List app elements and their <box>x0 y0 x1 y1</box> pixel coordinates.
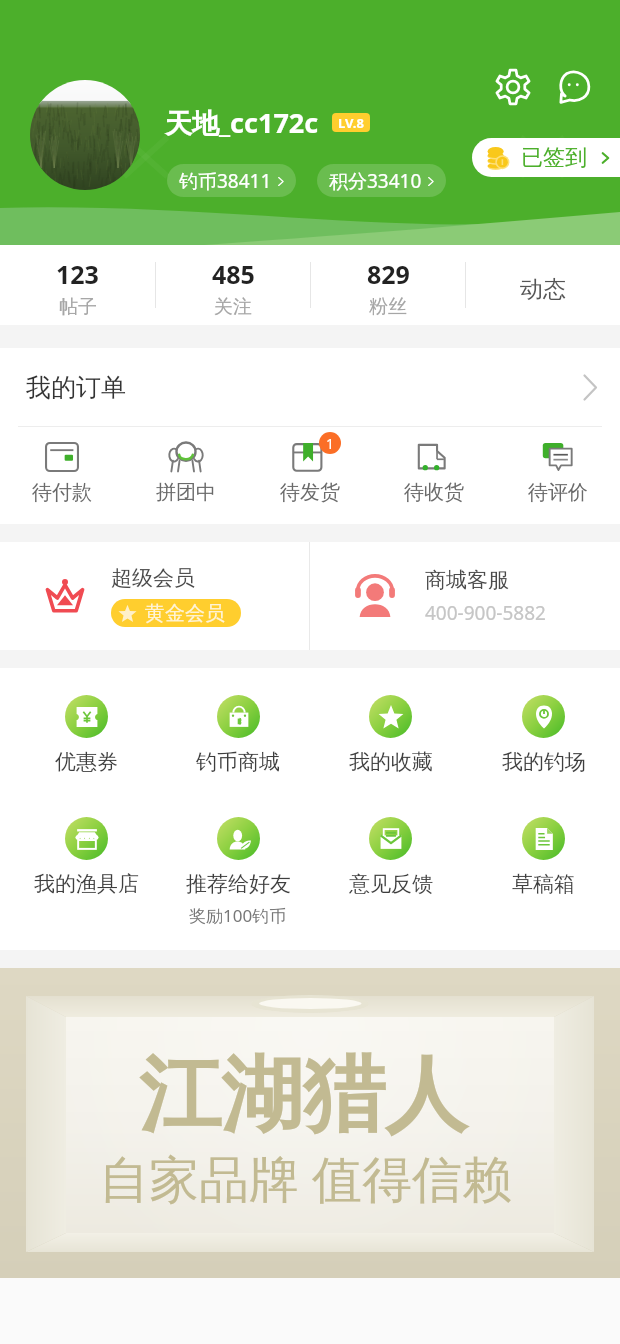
staticText: 待付款 <box>32 480 92 505</box>
staticText: 待发货 <box>280 480 340 505</box>
staticText: LV.8 <box>338 114 364 132</box>
button[interactable]: 草稿箱 <box>467 817 620 897</box>
button[interactable]: 超级会员 <box>0 542 309 650</box>
staticText: 天地_cc172c <box>165 104 319 141</box>
button[interactable]: Messages <box>554 68 592 106</box>
staticText: 我的钓场 <box>502 749 586 775</box>
button[interactable]: 推荐给好友 <box>162 817 314 927</box>
staticText: 关注 <box>214 295 252 319</box>
button[interactable]: 拼团中 <box>124 427 248 505</box>
staticText: 待评价 <box>528 480 588 505</box>
staticText: 我的收藏 <box>349 749 433 775</box>
button[interactable]: 钓币38411 <box>167 164 296 197</box>
staticText: 优惠券 <box>55 749 118 775</box>
button[interactable]: 123 <box>0 245 155 325</box>
staticText: 自家品牌 值得信赖 <box>99 1144 512 1212</box>
staticText: 草稿箱 <box>512 871 575 897</box>
button[interactable]: 积分33410 <box>317 164 446 197</box>
staticText: 黄金会员 <box>145 601 225 626</box>
button[interactable]: 我的钓场 <box>467 695 620 775</box>
staticText: 意见反馈 <box>349 871 433 897</box>
staticText: 积分33410 <box>329 168 422 194</box>
staticText: 1 <box>326 434 335 453</box>
button[interactable]: 商城客服 <box>310 542 620 650</box>
button[interactable]: Brand banner <box>0 968 620 1278</box>
button[interactable]: 钓币商城 <box>162 695 314 775</box>
staticText: 我的订单 <box>26 372 126 403</box>
button[interactable]: 1 <box>248 427 372 505</box>
button[interactable]: 我的订单 <box>0 348 620 426</box>
staticText: 400-900-5882 <box>425 600 546 626</box>
staticText: 粉丝 <box>369 295 407 319</box>
staticText: 拼团中 <box>156 480 216 505</box>
staticText: 动态 <box>520 275 566 304</box>
button[interactable]: 我的渔具店 <box>10 817 162 897</box>
staticText: 123 <box>56 257 99 291</box>
staticText: 商城客服 <box>425 567 509 593</box>
staticText: 推荐给好友 <box>186 871 291 897</box>
button[interactable]: 待收货 <box>372 427 496 505</box>
staticText: 已签到 <box>521 144 587 172</box>
staticText: 江湖猎人 <box>139 1044 467 1147</box>
staticText: 待收货 <box>404 480 464 505</box>
staticText: 钓币商城 <box>196 749 280 775</box>
staticText: 钓币38411 <box>179 168 272 194</box>
button[interactable]: 829 <box>311 245 465 325</box>
button[interactable]: 已签到 <box>472 138 620 177</box>
staticText: 485 <box>212 257 255 291</box>
button[interactable]: 待评价 <box>496 427 620 505</box>
button[interactable]: Profile photo <box>30 80 140 190</box>
staticText: 超级会员 <box>111 565 195 591</box>
staticText: 829 <box>367 257 410 291</box>
button[interactable]: 优惠券 <box>10 695 162 775</box>
staticText: 我的渔具店 <box>34 871 139 897</box>
button[interactable]: 我的收藏 <box>314 695 467 775</box>
staticText: 奖励100钓币 <box>189 904 287 927</box>
button[interactable]: Settings <box>494 68 532 106</box>
button[interactable]: 485 <box>156 245 310 325</box>
staticText: 帖子 <box>59 295 97 319</box>
button[interactable]: 动态 <box>466 245 620 325</box>
button[interactable]: 意见反馈 <box>314 817 467 897</box>
button[interactable]: 待付款 <box>0 427 124 505</box>
